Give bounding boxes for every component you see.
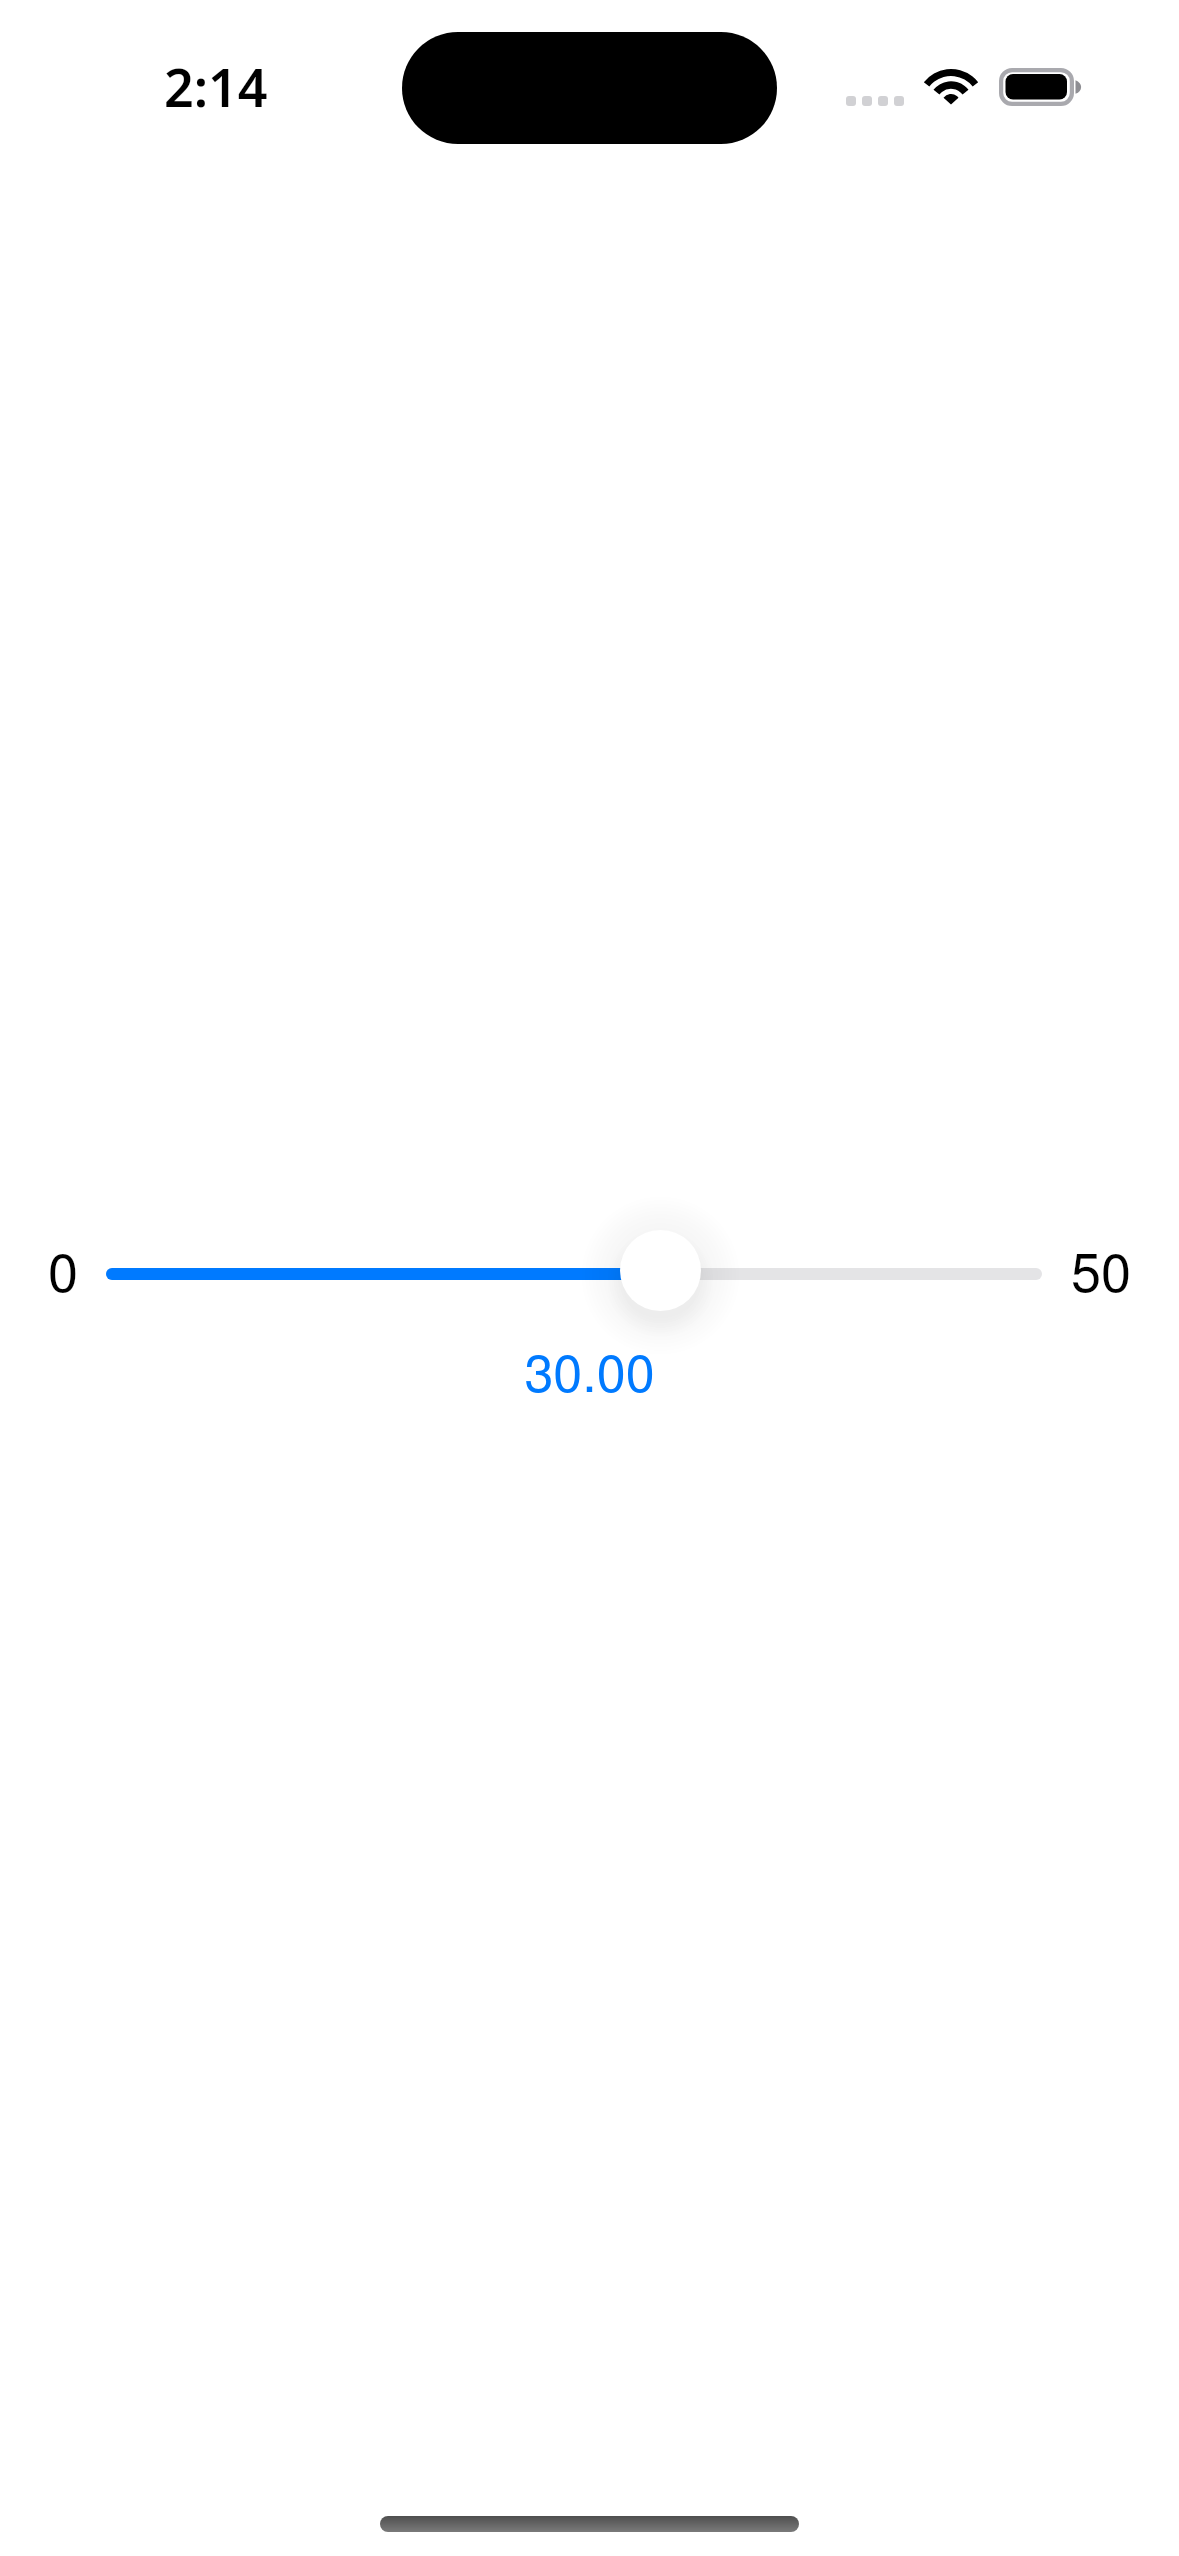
staticText: 2:14 [164, 51, 268, 122]
button[interactable]: Slider thumb [620, 1230, 701, 1311]
other: Wi-Fi [919, 63, 983, 111]
other: Battery full [997, 66, 1085, 108]
staticText: 30.00 [0, 1332, 1179, 1406]
button[interactable]: Value slider, 30 of 50 [106, 1268, 1042, 1280]
button[interactable]: Home indicator [380, 2516, 799, 2532]
other: Cellular signal [846, 96, 906, 108]
staticText: 0 [48, 1230, 79, 1307]
staticText: 50 [1071, 1230, 1132, 1307]
